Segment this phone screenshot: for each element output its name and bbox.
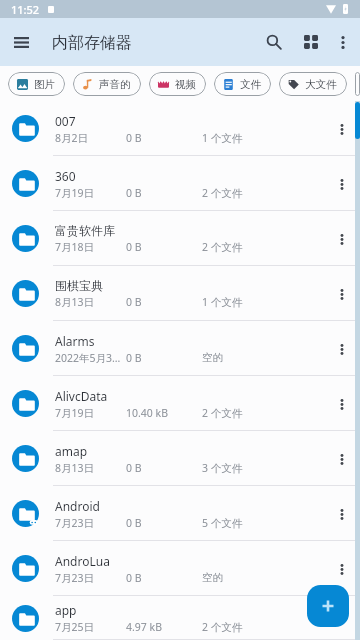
staticText: 7月25日 xyxy=(55,620,126,634)
staticText: 1 个文件 xyxy=(202,131,243,145)
staticText: 2 个文件 xyxy=(202,186,243,200)
staticText: 2 个文件 xyxy=(202,620,243,634)
button[interactable]: Search xyxy=(260,28,288,56)
staticText: 空的 xyxy=(202,571,223,584)
button[interactable]: amap xyxy=(0,431,360,486)
staticText: 0 B xyxy=(126,131,202,145)
button[interactable]: 围棋宝典 xyxy=(0,266,360,321)
button[interactable]: 压缩 xyxy=(355,72,360,96)
staticText: 4.97 kB xyxy=(126,620,202,634)
button[interactable]: AndroLua xyxy=(0,541,360,596)
staticText: 大文件 xyxy=(305,78,337,91)
staticText: 0 B xyxy=(126,186,202,200)
button[interactable]: More options xyxy=(327,169,357,199)
staticText: 富贵软件库 xyxy=(55,223,115,238)
button[interactable]: More options xyxy=(327,114,357,144)
button[interactable]: 文件 xyxy=(214,72,271,96)
button[interactable]: Grid view xyxy=(297,28,325,56)
staticText: 声音的 xyxy=(99,78,131,91)
staticText: 空的 xyxy=(202,351,223,364)
button[interactable]: More options xyxy=(327,389,357,419)
staticText: 图片 xyxy=(34,78,55,91)
staticText: 文件 xyxy=(240,78,261,91)
button[interactable]: 富贵软件库 xyxy=(0,211,360,266)
staticText: 0 B xyxy=(126,295,202,309)
button[interactable]: More options xyxy=(327,279,357,309)
staticText: 1 个文件 xyxy=(202,295,243,309)
staticText: 10.40 kB xyxy=(126,406,202,420)
staticText: 2 个文件 xyxy=(202,240,243,254)
staticText: 7月19日 xyxy=(55,186,126,200)
staticText: 内部存储器 xyxy=(52,33,132,53)
staticText: 2 个文件 xyxy=(202,406,243,420)
button[interactable]: 声音的 xyxy=(73,72,141,96)
staticText: AndroLua xyxy=(55,553,110,569)
staticText: 2022年5月3… xyxy=(55,351,126,365)
staticText: 7月18日 xyxy=(55,240,126,254)
button[interactable]: Alarms xyxy=(0,321,360,376)
button[interactable]: More options xyxy=(327,499,357,529)
button[interactable]: app xyxy=(0,596,360,640)
button[interactable]: Android xyxy=(0,486,360,541)
button[interactable]: Add xyxy=(307,585,349,627)
button[interactable]: More options xyxy=(327,334,357,364)
staticText: 0 B xyxy=(126,516,202,530)
button[interactable]: Menu xyxy=(7,28,35,56)
staticText: 8月13日 xyxy=(55,461,126,475)
staticText: 围棋宝典 xyxy=(55,278,103,293)
staticText: 007 xyxy=(55,113,76,129)
button[interactable]: More options xyxy=(327,554,357,584)
staticText: Alarms xyxy=(55,333,95,349)
button[interactable]: 图片 xyxy=(8,72,65,96)
staticText: 7月19日 xyxy=(55,406,126,420)
staticText: 0 B xyxy=(126,240,202,254)
button[interactable]: 大文件 xyxy=(279,72,347,96)
button[interactable]: More options xyxy=(327,224,357,254)
staticText: Android xyxy=(55,498,100,514)
staticText: 11:52 xyxy=(11,2,40,17)
staticText: 3 个文件 xyxy=(202,461,243,475)
staticText: 0 B xyxy=(126,461,202,475)
staticText: 7月23日 xyxy=(55,571,126,585)
button[interactable]: 360 xyxy=(0,156,360,211)
staticText: 视频 xyxy=(175,78,196,91)
staticText: 8月13日 xyxy=(55,295,126,309)
button[interactable]: 视频 xyxy=(149,72,206,96)
button[interactable]: More options xyxy=(327,603,357,633)
staticText: AlivcData xyxy=(55,388,108,404)
staticText: 8月2日 xyxy=(55,131,126,145)
button[interactable]: More options xyxy=(327,444,357,474)
button[interactable]: AlivcData xyxy=(0,376,360,431)
staticText: 360 xyxy=(55,168,76,184)
staticText: 5 个文件 xyxy=(202,516,243,530)
staticText: 0 B xyxy=(126,351,202,365)
button[interactable]: 007 xyxy=(0,101,360,156)
staticText: app xyxy=(55,602,77,618)
staticText: 0 B xyxy=(126,571,202,585)
button[interactable]: More options xyxy=(329,28,357,56)
staticText: amap xyxy=(55,443,88,459)
staticText: 7月23日 xyxy=(55,516,126,530)
